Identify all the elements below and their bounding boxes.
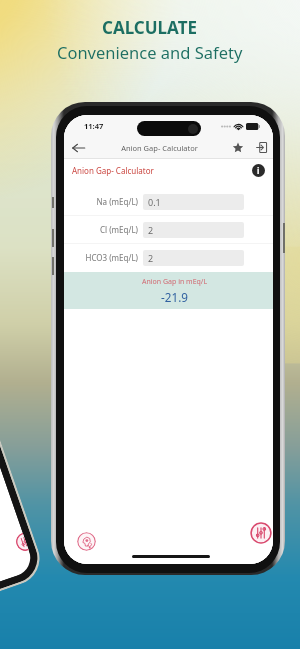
staticText: Anion Gap- Calculator (92, 143, 227, 153)
button[interactable]: Back (64, 137, 92, 158)
staticText: HCO3 (mEq/L) (64, 252, 138, 263)
button[interactable]: 2 (143, 222, 244, 238)
staticText: CALCULATE (102, 16, 198, 39)
staticText: i (257, 165, 260, 176)
staticText: Convenience and Safety (57, 41, 243, 63)
staticText: 11:47 (84, 121, 104, 131)
button[interactable]: Log in (249, 137, 273, 158)
button[interactable]: Favorite (227, 137, 249, 158)
staticText: -21.9 (161, 289, 188, 305)
button[interactable]: Settings (13, 532, 29, 554)
staticText: Anion Gap- Calculator (72, 165, 252, 176)
staticText: Cl (mEq/L) (64, 224, 138, 235)
button[interactable]: Settings (250, 522, 272, 544)
button[interactable]: Information (252, 164, 265, 177)
staticText: Na (mEq/L) (64, 196, 138, 207)
staticText: 2 (148, 224, 154, 236)
button[interactable]: 2 (143, 250, 244, 266)
button[interactable]: Ask AI (77, 532, 96, 551)
button[interactable]: 0.1 (143, 194, 244, 210)
staticText: Anion Gap in mEq/L (142, 277, 208, 287)
staticText: 2 (148, 252, 154, 264)
staticText: 0.1 (148, 196, 161, 208)
